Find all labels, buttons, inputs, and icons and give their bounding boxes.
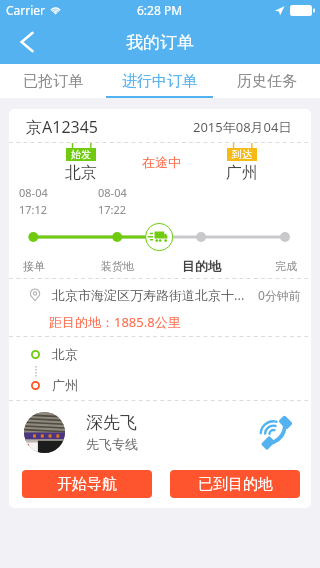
staticText: Carrier xyxy=(6,2,46,18)
staticText: 完成 xyxy=(275,259,297,273)
staticText: 6:28 PM xyxy=(137,2,183,18)
button[interactable]: Back xyxy=(0,20,44,64)
staticText: 距目的地：1885.8公里 xyxy=(49,313,181,331)
staticText: 目的地 xyxy=(182,258,221,274)
button[interactable]: Call driver xyxy=(255,410,299,454)
button[interactable]: 北京市海淀区万寿路街道北京十... xyxy=(9,279,311,311)
button[interactable]: 已抢订单 xyxy=(0,64,106,98)
staticText: 北京 xyxy=(65,163,97,183)
button[interactable]: 历史任务 xyxy=(213,64,320,98)
staticText: 深先飞 xyxy=(86,412,137,433)
button[interactable]: 开始导航 xyxy=(22,470,152,498)
button[interactable]: 已到目的地 xyxy=(170,470,300,498)
staticText: 京A12345 xyxy=(26,116,98,138)
staticText: 先飞专线 xyxy=(86,436,138,452)
staticText: 进行中订单 xyxy=(122,72,197,91)
staticText: 我的订单 xyxy=(126,32,194,53)
staticText: 接单 xyxy=(23,259,45,273)
staticText: 在途中 xyxy=(142,154,181,170)
staticText: 已到目的地 xyxy=(198,475,273,494)
staticText: 0分钟前 xyxy=(258,287,301,303)
staticText: 北京市海淀区万寿路街道北京十... xyxy=(52,286,245,304)
staticText: 历史任务 xyxy=(237,72,297,91)
staticText: 17:12 xyxy=(19,202,48,217)
staticText: 17:22 xyxy=(98,202,127,217)
staticText: 装货地 xyxy=(101,259,134,273)
button[interactable]: 深先飞 xyxy=(9,398,311,466)
staticText: 广州 xyxy=(52,377,78,393)
button[interactable]: 进行中订单 xyxy=(106,64,213,98)
staticText: 北京 xyxy=(52,346,78,362)
staticText: 已抢订单 xyxy=(23,72,83,91)
staticText: 08-04 xyxy=(19,185,48,200)
staticText: 始发 xyxy=(71,148,91,161)
staticText: 08-04 xyxy=(98,185,127,200)
staticText: 广州 xyxy=(226,163,258,183)
staticText: 到达 xyxy=(232,148,252,161)
staticText: 2015年08月04日 xyxy=(193,118,292,136)
staticText: 开始导航 xyxy=(57,475,117,494)
